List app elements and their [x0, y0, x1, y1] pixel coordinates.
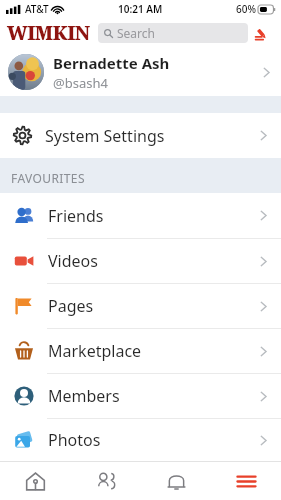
staticText: Marketplace — [48, 340, 259, 362]
staticText: Photos — [48, 429, 259, 451]
button[interactable]: Friends — [71, 462, 141, 500]
staticText: Search — [117, 25, 155, 41]
button[interactable]: System Settings — [0, 113, 281, 158]
staticText: Members — [48, 385, 259, 407]
staticText: Pages — [48, 295, 259, 317]
staticText: @bsash4 — [53, 74, 108, 92]
staticText: System Settings — [45, 125, 259, 147]
staticText: FAVOURITES — [11, 170, 85, 186]
staticText: WIMKIN — [7, 20, 90, 46]
button[interactable]: Menu — [211, 462, 281, 500]
button[interactable]: Pages — [0, 284, 281, 328]
staticText: AT&T — [25, 2, 49, 16]
button[interactable]: Friends — [0, 193, 281, 238]
staticText: Bernadette Ash — [53, 53, 170, 73]
staticText: 60% — [236, 2, 256, 16]
button[interactable]: Search — [98, 23, 248, 43]
button[interactable]: Notifications — [141, 462, 211, 500]
button[interactable]: Home — [0, 462, 71, 500]
staticText: Videos — [48, 250, 259, 272]
button[interactable]: Marketplace — [0, 329, 281, 373]
button[interactable]: Videos — [0, 239, 281, 283]
staticText: 10:21 AM — [118, 2, 163, 16]
button[interactable]: Photos — [0, 419, 281, 461]
button[interactable]: Bernadette Ash — [0, 48, 281, 96]
staticText: Friends — [48, 205, 259, 227]
button[interactable]: Members — [0, 374, 281, 418]
button[interactable]: Compose post — [248, 18, 274, 48]
